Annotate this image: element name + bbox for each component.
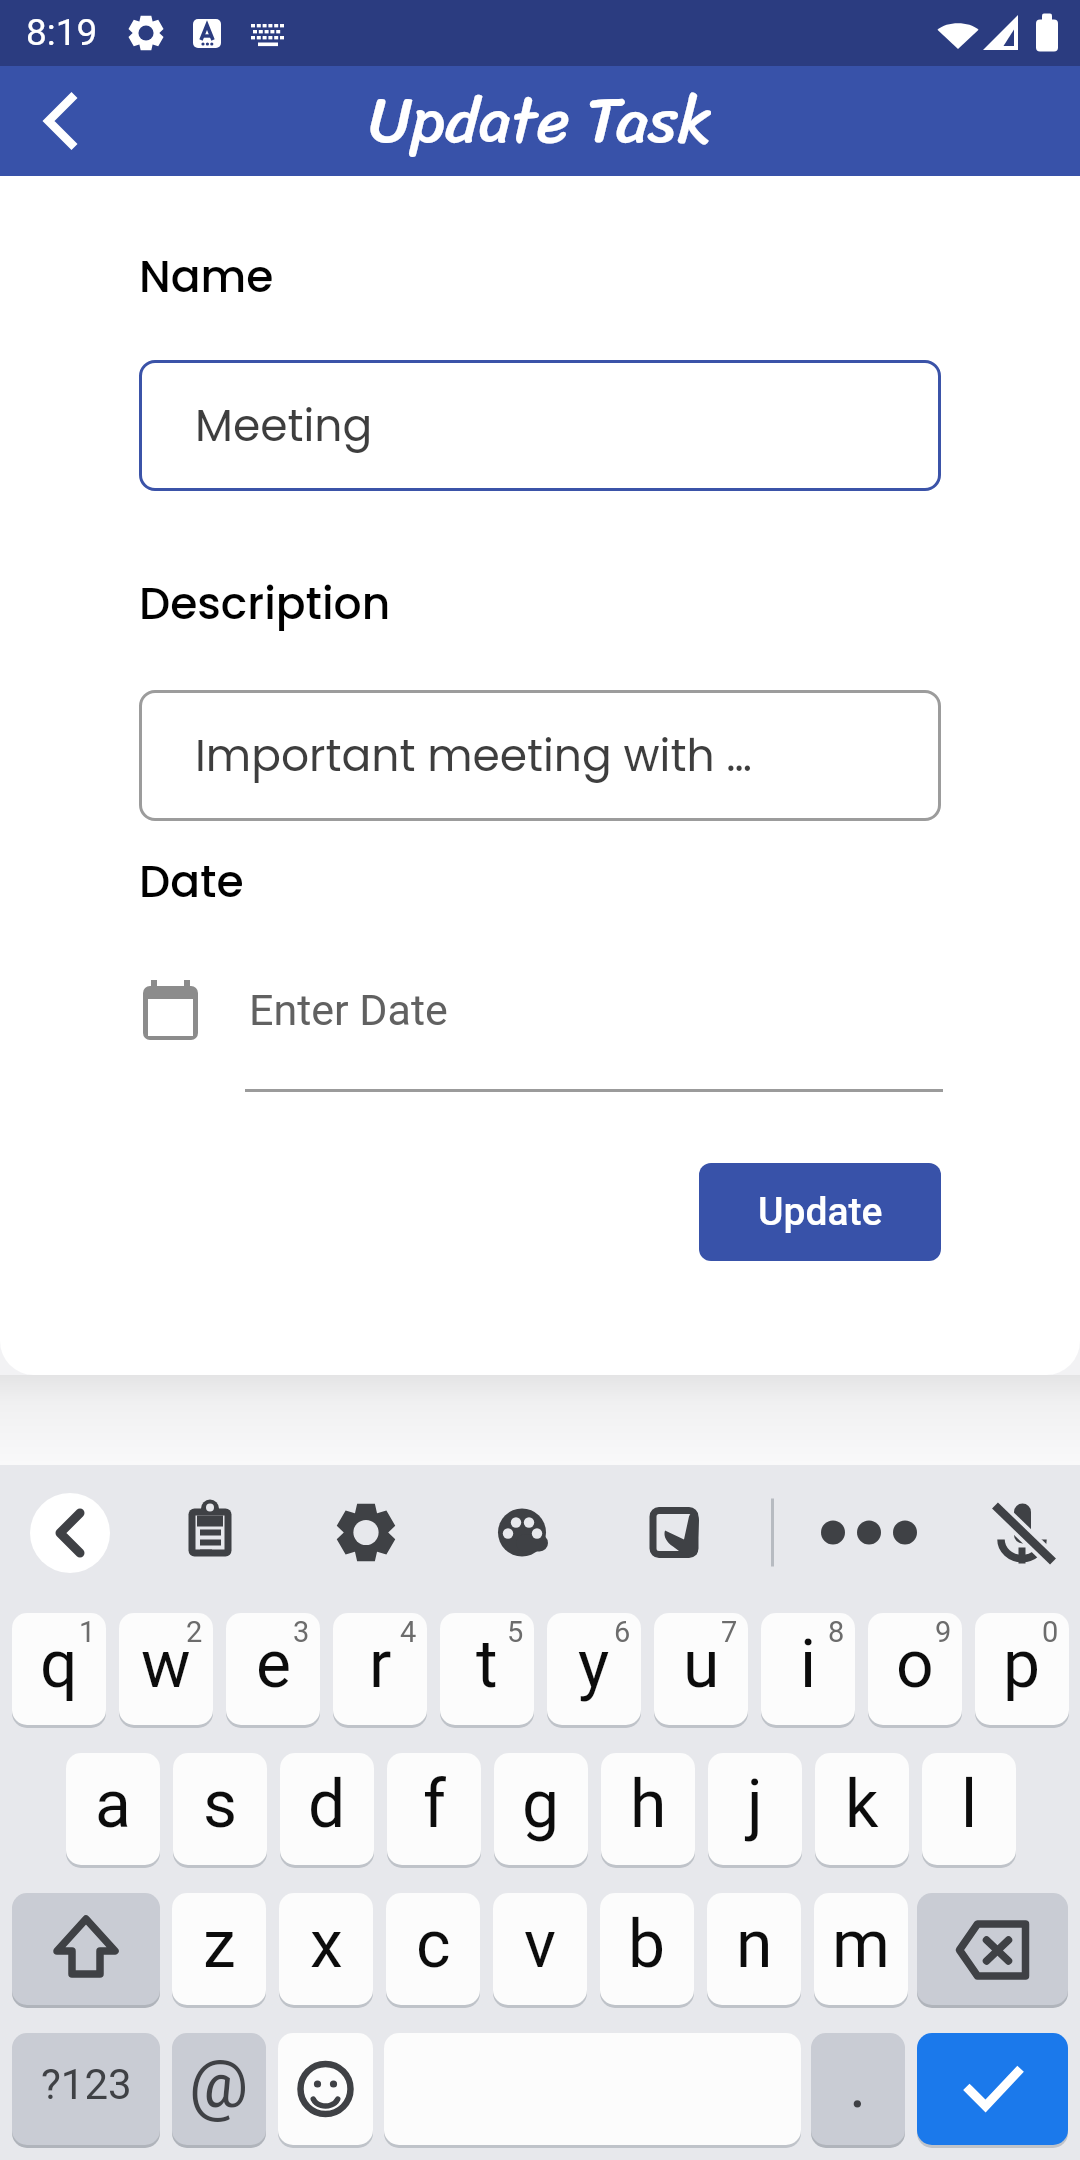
staticText: 4 (400, 1615, 417, 1649)
button[interactable]: l (922, 1753, 1016, 1865)
button[interactable]: ?123 (12, 2033, 160, 2145)
staticText: m (832, 1906, 890, 1983)
button[interactable]: Meeting (139, 360, 941, 491)
staticText: Date (139, 851, 244, 913)
button[interactable]: r (333, 1613, 427, 1725)
staticText: q (40, 1626, 78, 1703)
button[interactable]: q (12, 1613, 106, 1725)
button[interactable]: More options (823, 1465, 915, 1600)
staticText: 8 (828, 1615, 845, 1649)
staticText: i (800, 1626, 817, 1703)
button[interactable]: a (66, 1753, 160, 1865)
button[interactable]: Themes (476, 1465, 568, 1600)
button[interactable]: x (279, 1893, 373, 2005)
staticText: t (476, 1626, 498, 1703)
staticText: 9 (935, 1615, 952, 1649)
staticText: 1 (79, 1615, 96, 1649)
button[interactable]: @ (172, 2033, 266, 2145)
staticText: Name (139, 246, 274, 308)
button[interactable]: j (708, 1753, 802, 1865)
button[interactable]: m (814, 1893, 908, 2005)
staticText: 0 (1042, 1615, 1059, 1649)
button[interactable]: Back (16, 79, 100, 163)
staticText: p (1003, 1626, 1041, 1703)
staticText: a (95, 1766, 131, 1843)
button[interactable]: Important meeting with … (139, 690, 941, 821)
button[interactable]: p (975, 1613, 1069, 1725)
staticText: 7 (721, 1615, 738, 1649)
button[interactable]: e (226, 1613, 320, 1725)
staticText: r (369, 1626, 392, 1703)
button[interactable]: u (654, 1613, 748, 1725)
button[interactable]: Settings (320, 1465, 412, 1600)
button[interactable]: k (815, 1753, 909, 1865)
staticText: k (845, 1766, 879, 1843)
staticText: Enter Date (249, 985, 448, 1035)
button[interactable]: i (761, 1613, 855, 1725)
staticText: f (423, 1766, 446, 1843)
button[interactable]: s (173, 1753, 267, 1865)
button[interactable]: z (172, 1893, 266, 2005)
button[interactable]: h (601, 1753, 695, 1865)
staticText: @ (189, 2046, 249, 2123)
staticText: . (849, 2046, 867, 2123)
button[interactable]: w (119, 1613, 213, 1725)
button[interactable]: Emoji (278, 2033, 373, 2145)
staticText: 2 (186, 1615, 203, 1649)
button[interactable]: b (600, 1893, 694, 2005)
button[interactable]: c (386, 1893, 480, 2005)
staticText: u (683, 1626, 720, 1703)
button[interactable]: Shift (12, 1893, 160, 2005)
button[interactable]: Clipboard (164, 1465, 256, 1600)
button[interactable]: Handwriting (629, 1465, 721, 1600)
staticText: l (961, 1766, 978, 1843)
staticText: z (203, 1906, 236, 1983)
staticText: 5 (507, 1615, 524, 1649)
button[interactable]: Backspace (917, 1893, 1068, 2005)
staticText: Description (139, 573, 391, 635)
button[interactable]: Update (699, 1163, 941, 1261)
staticText: Meeting (195, 395, 373, 457)
staticText: 6 (614, 1615, 631, 1649)
button[interactable]: d (280, 1753, 374, 1865)
button[interactable]: f (387, 1753, 481, 1865)
button[interactable]: o (868, 1613, 962, 1725)
button[interactable]: n (707, 1893, 801, 2005)
staticText: o (896, 1626, 934, 1703)
button[interactable]: Voice input (978, 1465, 1070, 1600)
staticText: g (522, 1766, 560, 1843)
staticText: 3 (293, 1615, 310, 1649)
staticText: Update Task (369, 64, 712, 174)
button[interactable]: Enter Date (139, 979, 941, 1119)
staticText: w (141, 1626, 191, 1703)
staticText: h (630, 1766, 667, 1843)
staticText: s (203, 1766, 238, 1843)
button[interactable]: . (811, 2033, 905, 2145)
staticText: c (416, 1906, 451, 1983)
button[interactable]: Collapse keyboard (30, 1493, 110, 1573)
staticText: y (578, 1626, 610, 1703)
button[interactable]: Enter (917, 2033, 1068, 2145)
staticText: ?123 (41, 2060, 132, 2109)
staticText: Update (758, 1189, 883, 1235)
button[interactable]: t (440, 1613, 534, 1725)
staticText: x (310, 1906, 343, 1983)
staticText: d (308, 1766, 346, 1843)
button[interactable]: y (547, 1613, 641, 1725)
button[interactable]: v (493, 1893, 587, 2005)
staticText: Important meeting with … (195, 725, 752, 787)
staticText: n (736, 1906, 773, 1983)
staticText: j (747, 1766, 763, 1843)
button[interactable]: g (494, 1753, 588, 1865)
staticText: b (628, 1906, 666, 1983)
staticText: e (256, 1626, 291, 1703)
staticText: v (524, 1906, 556, 1983)
staticText: 8:19 (26, 11, 98, 54)
